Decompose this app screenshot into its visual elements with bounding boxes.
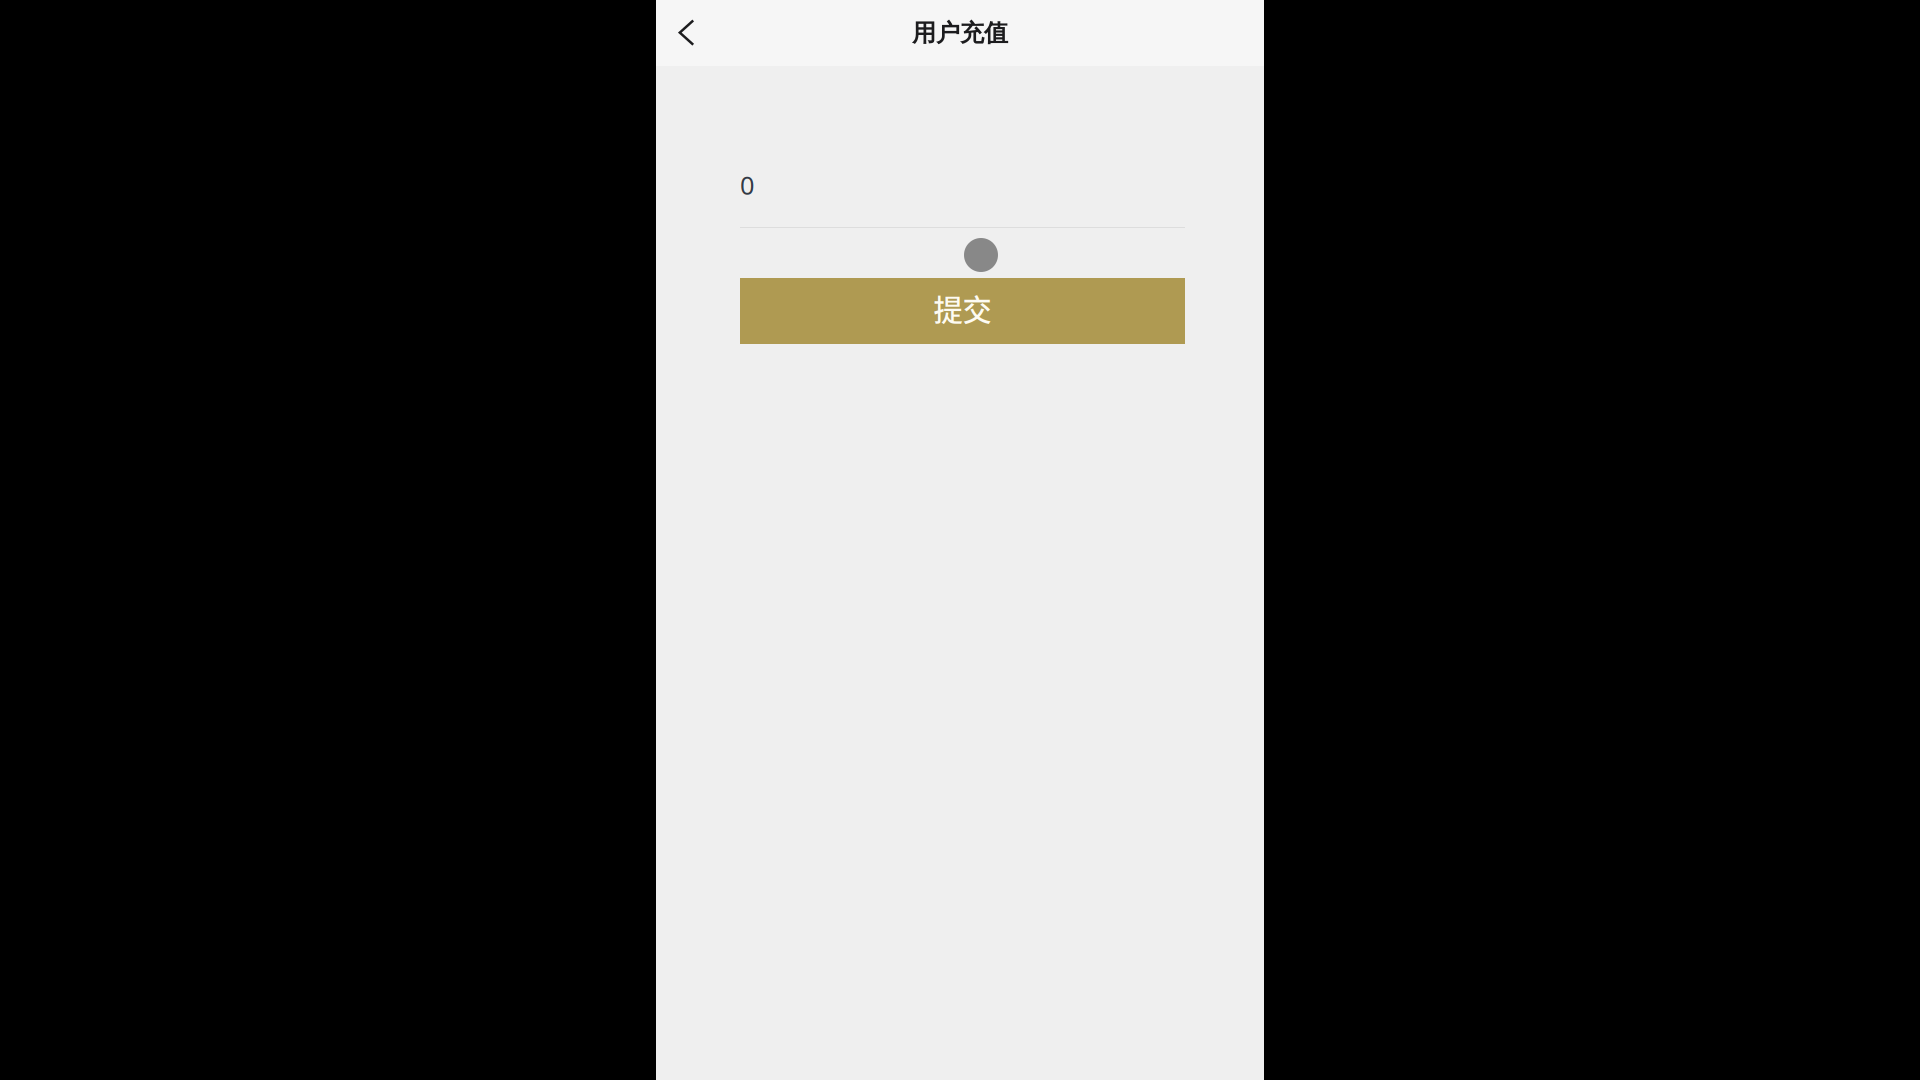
staticText: 提交 bbox=[933, 287, 991, 329]
staticText: 用户充值 bbox=[912, 18, 1008, 48]
button[interactable]: Amount bbox=[740, 168, 1185, 228]
button[interactable]: 提交 bbox=[740, 278, 1185, 344]
staticText: 0 bbox=[740, 168, 754, 202]
button[interactable]: Back bbox=[656, 0, 714, 66]
